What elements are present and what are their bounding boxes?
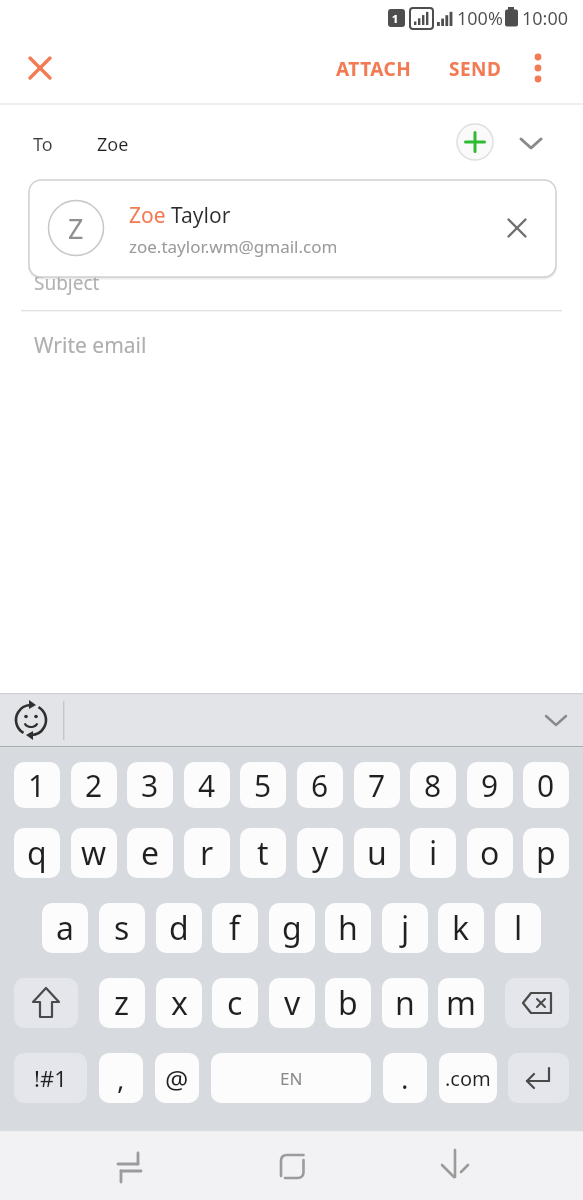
- button[interactable]: [24, 52, 56, 84]
- button[interactable]: .: [383, 1053, 427, 1103]
- staticText: 6: [311, 765, 329, 806]
- button[interactable]: [501, 212, 533, 244]
- staticText: 7: [368, 765, 386, 806]
- button[interactable]: c: [212, 978, 258, 1028]
- staticText: n: [395, 981, 415, 1025]
- staticText: Zoe Taylor: [129, 201, 231, 230]
- staticText: k: [452, 906, 470, 950]
- button[interactable]: [457, 124, 493, 160]
- button[interactable]: i: [410, 828, 456, 878]
- button[interactable]: [508, 1053, 569, 1103]
- staticText: 8: [424, 765, 442, 806]
- button[interactable]: d: [156, 903, 202, 953]
- staticText: s: [114, 906, 130, 950]
- button[interactable]: EN: [211, 1053, 371, 1103]
- button[interactable]: [505, 978, 569, 1028]
- button[interactable]: q: [14, 828, 60, 878]
- button[interactable]: [29, 180, 556, 277]
- staticText: i: [429, 831, 438, 875]
- staticText: ,: [117, 1059, 125, 1097]
- staticText: zoe.taylor.wm@gmail.com: [129, 235, 338, 258]
- button[interactable]: j: [382, 903, 428, 953]
- staticText: v: [284, 981, 301, 1025]
- button[interactable]: u: [354, 828, 400, 878]
- staticText: z: [114, 981, 130, 1025]
- staticText: r: [200, 831, 214, 875]
- staticText: f: [229, 906, 241, 950]
- button[interactable]: [12, 701, 52, 741]
- button[interactable]: [269, 1145, 313, 1189]
- button[interactable]: w: [71, 828, 117, 878]
- button[interactable]: z: [99, 978, 145, 1028]
- button[interactable]: SEND: [449, 56, 502, 82]
- button[interactable]: v: [269, 978, 315, 1028]
- staticText: d: [169, 906, 189, 950]
- staticText: j: [401, 906, 410, 950]
- button[interactable]: h: [325, 903, 371, 953]
- staticText: Write email: [34, 331, 147, 360]
- staticText: g: [282, 906, 302, 950]
- button[interactable]: [433, 1145, 477, 1189]
- staticText: l: [514, 906, 523, 950]
- staticText: b: [338, 981, 358, 1025]
- button[interactable]: ATTACH: [336, 56, 412, 82]
- button[interactable]: 8: [410, 762, 456, 808]
- button[interactable]: m: [438, 978, 484, 1028]
- button[interactable]: 6: [297, 762, 343, 808]
- button[interactable]: 5: [240, 762, 286, 808]
- button[interactable]: p: [523, 828, 569, 878]
- button[interactable]: !#1: [14, 1053, 87, 1103]
- staticText: h: [338, 906, 358, 950]
- button[interactable]: 4: [184, 762, 230, 808]
- staticText: Z: [68, 210, 84, 247]
- button[interactable]: l: [495, 903, 541, 953]
- staticText: 2: [85, 765, 103, 806]
- staticText: .com: [445, 1065, 491, 1092]
- button[interactable]: 7: [354, 762, 400, 808]
- button[interactable]: [14, 978, 78, 1028]
- button[interactable]: [522, 52, 554, 84]
- button[interactable]: .com: [439, 1053, 497, 1103]
- button[interactable]: 9: [467, 762, 513, 808]
- staticText: 5: [254, 765, 272, 806]
- button[interactable]: [108, 1145, 152, 1189]
- button[interactable]: ,: [99, 1053, 143, 1103]
- staticText: y: [312, 831, 329, 875]
- staticText: @: [165, 1061, 189, 1096]
- button[interactable]: 1: [14, 762, 60, 808]
- staticText: .: [401, 1059, 409, 1097]
- button[interactable]: [538, 701, 578, 741]
- staticText: 0: [537, 765, 555, 806]
- staticText: To: [33, 132, 53, 157]
- staticText: 100%: [457, 6, 503, 31]
- button[interactable]: g: [269, 903, 315, 953]
- button[interactable]: n: [382, 978, 428, 1028]
- button[interactable]: 3: [127, 762, 173, 808]
- staticText: w: [81, 831, 107, 875]
- staticText: 3: [141, 765, 159, 806]
- button[interactable]: 2: [71, 762, 117, 808]
- button[interactable]: f: [212, 903, 258, 953]
- button[interactable]: t: [240, 828, 286, 878]
- button[interactable]: s: [99, 903, 145, 953]
- button[interactable]: r: [184, 828, 230, 878]
- staticText: 1: [28, 765, 46, 806]
- button[interactable]: k: [438, 903, 484, 953]
- button[interactable]: e: [127, 828, 173, 878]
- staticText: e: [141, 831, 160, 875]
- button[interactable]: @: [155, 1053, 199, 1103]
- staticText: 10:00: [522, 6, 569, 31]
- button[interactable]: [515, 127, 547, 159]
- staticText: !#1: [34, 1063, 67, 1093]
- staticText: q: [27, 831, 47, 875]
- button[interactable]: x: [156, 978, 202, 1028]
- button[interactable]: o: [467, 828, 513, 878]
- button[interactable]: a: [42, 903, 88, 953]
- button[interactable]: 0: [523, 762, 569, 808]
- staticText: x: [171, 981, 188, 1025]
- button[interactable]: y: [297, 828, 343, 878]
- button[interactable]: b: [325, 978, 371, 1028]
- staticText: o: [480, 831, 500, 875]
- staticText: t: [257, 831, 269, 875]
- staticText: Subject: [34, 270, 100, 296]
